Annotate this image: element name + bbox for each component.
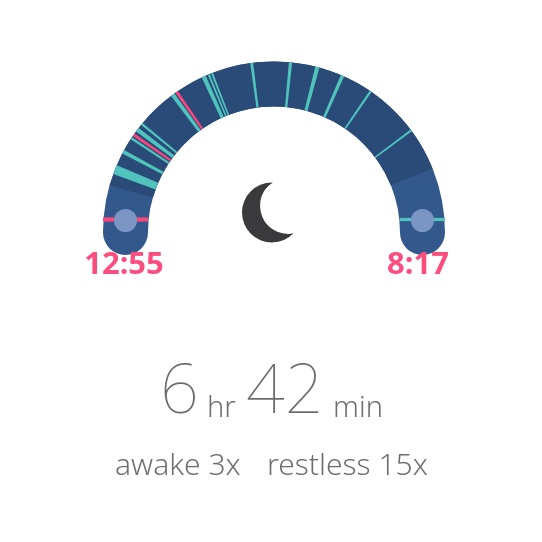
button[interactable]: restless 15x — [267, 443, 428, 484]
staticText: hr — [207, 386, 236, 425]
button[interactable]: 6 — [0, 0, 542, 542]
button[interactable]: Sleep duration arc from 12:55 to 8:17 — [0, 0, 542, 542]
button[interactable]: 12:55 — [62, 241, 186, 281]
button[interactable]: 8:17 — [362, 241, 474, 281]
staticText: 6 — [160, 340, 199, 433]
staticText: 12:55 — [84, 241, 164, 281]
staticText: 8:17 — [387, 241, 449, 281]
staticText: 42 — [246, 340, 324, 433]
staticText: min — [333, 386, 383, 425]
button[interactable]: awake 3x — [115, 443, 241, 484]
